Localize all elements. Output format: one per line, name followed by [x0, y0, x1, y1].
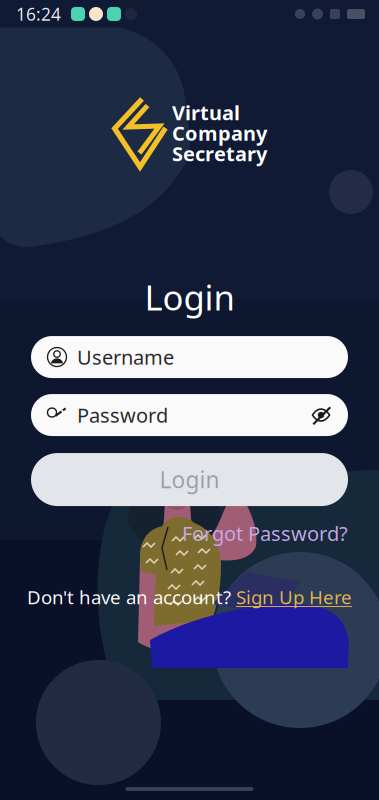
button[interactable]: Forgot Password? — [182, 520, 348, 547]
staticText: 16:24 — [16, 2, 61, 25]
staticText: Don't have an account? — [27, 585, 231, 609]
button[interactable]: Username — [31, 336, 348, 378]
button[interactable]: Password — [31, 394, 348, 436]
staticText: Login — [159, 464, 219, 495]
staticText: Company — [172, 120, 267, 146]
staticText: Password — [77, 402, 168, 428]
staticText: Virtual — [172, 99, 240, 126]
staticText: Forgot Password? — [182, 520, 348, 547]
button[interactable]: Sign Up Here — [236, 585, 352, 609]
button[interactable]: Login — [31, 453, 348, 506]
staticText: Sign Up Here — [236, 585, 352, 609]
staticText: Login — [144, 274, 234, 320]
staticText: Username — [77, 344, 174, 370]
staticText: Secretary — [172, 140, 267, 167]
